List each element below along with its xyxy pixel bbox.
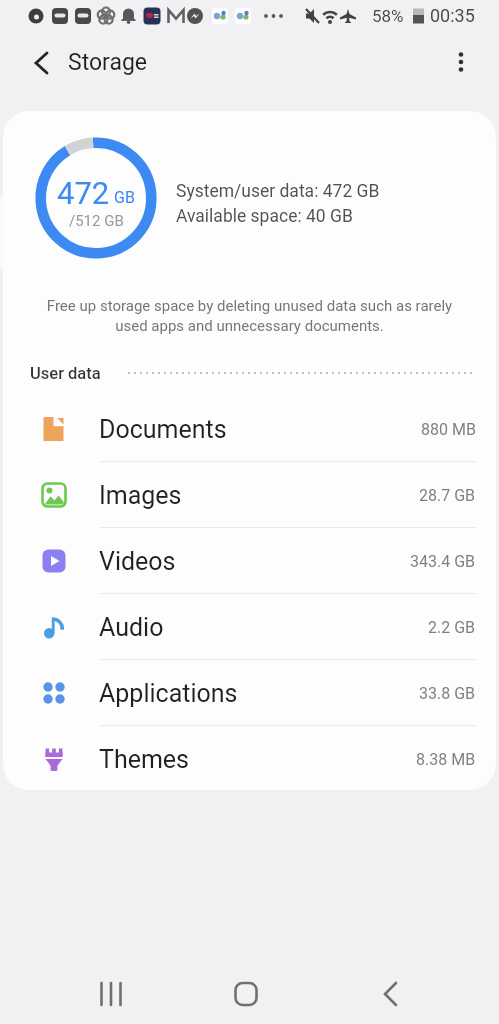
- staticText: Free up storage space by deleting unused…: [3, 297, 496, 335]
- staticText: 2.2 GB: [428, 618, 476, 637]
- staticText: 58%: [372, 6, 404, 26]
- staticText: Audio: [99, 613, 164, 642]
- button[interactable]: Images: [3, 462, 496, 528]
- button[interactable]: [24, 45, 60, 81]
- staticText: 00:35: [430, 5, 475, 26]
- staticText: System/user data: 472 GB: [176, 181, 380, 202]
- button[interactable]: [443, 44, 479, 80]
- button[interactable]: Audio: [3, 594, 496, 660]
- staticText: 472: [57, 175, 110, 211]
- button[interactable]: [86, 969, 136, 1019]
- staticText: GB: [114, 188, 135, 207]
- staticText: Storage: [68, 49, 148, 76]
- staticText: 33.8 GB: [419, 684, 476, 703]
- staticText: Videos: [99, 547, 176, 576]
- staticText: 28.7 GB: [419, 486, 476, 505]
- staticText: 8.38 MB: [416, 750, 476, 769]
- button[interactable]: Themes: [3, 726, 496, 792]
- staticText: User data: [30, 364, 101, 383]
- staticText: /512 GB: [69, 212, 124, 230]
- button[interactable]: Documents: [3, 396, 496, 462]
- staticText: Applications: [99, 679, 238, 708]
- staticText: Themes: [99, 745, 190, 774]
- staticText: Images: [99, 481, 182, 510]
- button[interactable]: [365, 969, 415, 1019]
- staticText: 880 MB: [421, 420, 476, 439]
- button[interactable]: Videos: [3, 528, 496, 594]
- staticText: 343.4 GB: [410, 552, 476, 571]
- button[interactable]: [221, 969, 271, 1019]
- staticText: Available space: 40 GB: [176, 206, 353, 227]
- staticText: Documents: [99, 415, 227, 444]
- button[interactable]: Applications: [3, 660, 496, 726]
